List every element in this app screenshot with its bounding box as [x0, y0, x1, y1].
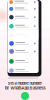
button[interactable] [8, 0, 39, 5]
button[interactable]: Open WhatsApp [21, 92, 29, 100]
button[interactable] [8, 58, 39, 65]
staticText: Get a mobile number [7, 81, 42, 86]
button[interactable] [8, 32, 39, 39]
staticText: for WhatsApp Business [4, 86, 45, 90]
button[interactable] [8, 23, 39, 30]
button[interactable] [8, 48, 39, 55]
button[interactable] [8, 6, 39, 12]
button[interactable] [8, 67, 39, 74]
button[interactable] [8, 40, 39, 47]
button[interactable] [8, 14, 39, 21]
